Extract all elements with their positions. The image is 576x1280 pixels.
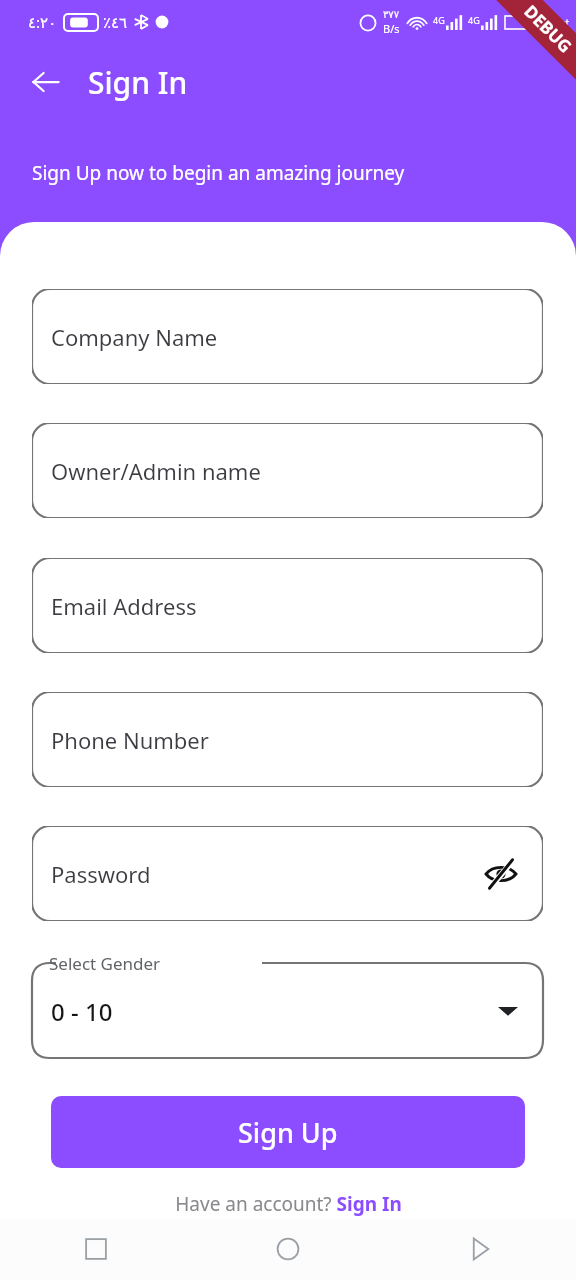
button[interactable]: Toggle password visibility bbox=[479, 852, 523, 896]
staticText: Company Name bbox=[51, 322, 218, 352]
staticText: Phone Number bbox=[51, 725, 209, 755]
staticText: Owner/Admin name bbox=[51, 456, 261, 486]
button[interactable]: Have an account? Sign In bbox=[0, 1186, 576, 1218]
button[interactable]: Company Name bbox=[32, 289, 543, 384]
staticText: ٣٧٧ bbox=[383, 9, 400, 21]
button[interactable]: Sign Up bbox=[51, 1096, 525, 1168]
staticText: Password bbox=[51, 859, 151, 889]
button[interactable]: Open gender dropdown bbox=[493, 996, 523, 1026]
staticText: Email Address bbox=[51, 591, 197, 621]
button[interactable]: Email Address bbox=[32, 558, 543, 653]
button[interactable]: Back bbox=[384, 1218, 576, 1280]
button[interactable]: Phone Number bbox=[32, 692, 543, 787]
staticText: 4G bbox=[468, 14, 480, 26]
staticText: Sign Up bbox=[238, 1114, 338, 1151]
staticText: B/s bbox=[383, 21, 400, 36]
staticText: 4G bbox=[433, 14, 445, 26]
staticText: ٪٤٦ bbox=[103, 14, 128, 31]
staticText: Sign Up now to begin an amazing journey bbox=[32, 160, 405, 186]
staticText: DEBUG bbox=[519, 0, 576, 58]
staticText: etisalat bbox=[535, 16, 570, 30]
button[interactable]: Home bbox=[192, 1218, 384, 1280]
button[interactable]: Recent apps bbox=[0, 1218, 192, 1280]
staticText: Sign In bbox=[88, 62, 188, 103]
button[interactable]: Back bbox=[22, 58, 70, 106]
button[interactable]: Owner/Admin name bbox=[32, 423, 543, 518]
staticText: Have an account? Sign In bbox=[175, 1191, 402, 1217]
button[interactable]: Password bbox=[32, 826, 543, 921]
staticText: ٤:٢٠ bbox=[28, 12, 57, 32]
button[interactable]: Select Gender bbox=[32, 952, 543, 1058]
staticText: 0 - 10 bbox=[51, 995, 113, 1028]
staticText: Select Gender bbox=[49, 952, 161, 975]
